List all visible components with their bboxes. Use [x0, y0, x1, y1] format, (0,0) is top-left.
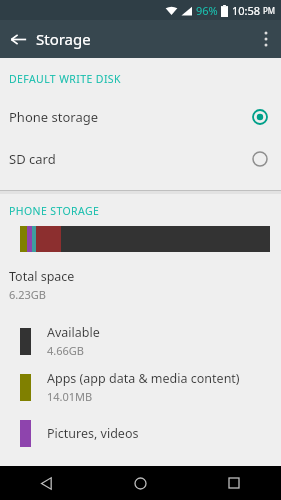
staticText: Available: [47, 324, 100, 341]
staticText: PHONE STORAGE: [9, 204, 100, 218]
staticText: Apps (app data & media content): [47, 370, 240, 387]
staticText: 10:58: [232, 3, 261, 18]
staticText: SD card: [9, 150, 252, 168]
staticText: Storage: [36, 29, 91, 49]
staticText: 14.01MB: [47, 389, 93, 404]
button[interactable]: Back: [0, 466, 93, 500]
button[interactable]: Pictures, videos: [0, 410, 281, 456]
button[interactable]: Apps (app data & media content): [0, 364, 281, 410]
button[interactable]: SD card: [0, 138, 281, 180]
staticText: Phone storage: [9, 108, 252, 126]
staticText: DEFAULT WRITE DISK: [9, 72, 121, 86]
staticText: Total space: [9, 268, 75, 285]
staticText: PM: [263, 5, 276, 16]
staticText: 4.66GB: [47, 343, 84, 358]
button[interactable]: Available: [0, 318, 281, 364]
button[interactable]: Back: [0, 20, 36, 58]
staticText: 6.23GB: [9, 287, 46, 302]
button[interactable]: Recent apps: [187, 466, 281, 500]
staticText: Pictures, videos: [47, 425, 139, 442]
staticText: 96%: [196, 3, 218, 18]
button[interactable]: Phone storage: [0, 96, 281, 138]
button[interactable]: More options: [251, 20, 281, 58]
button[interactable]: Home: [93, 466, 187, 500]
